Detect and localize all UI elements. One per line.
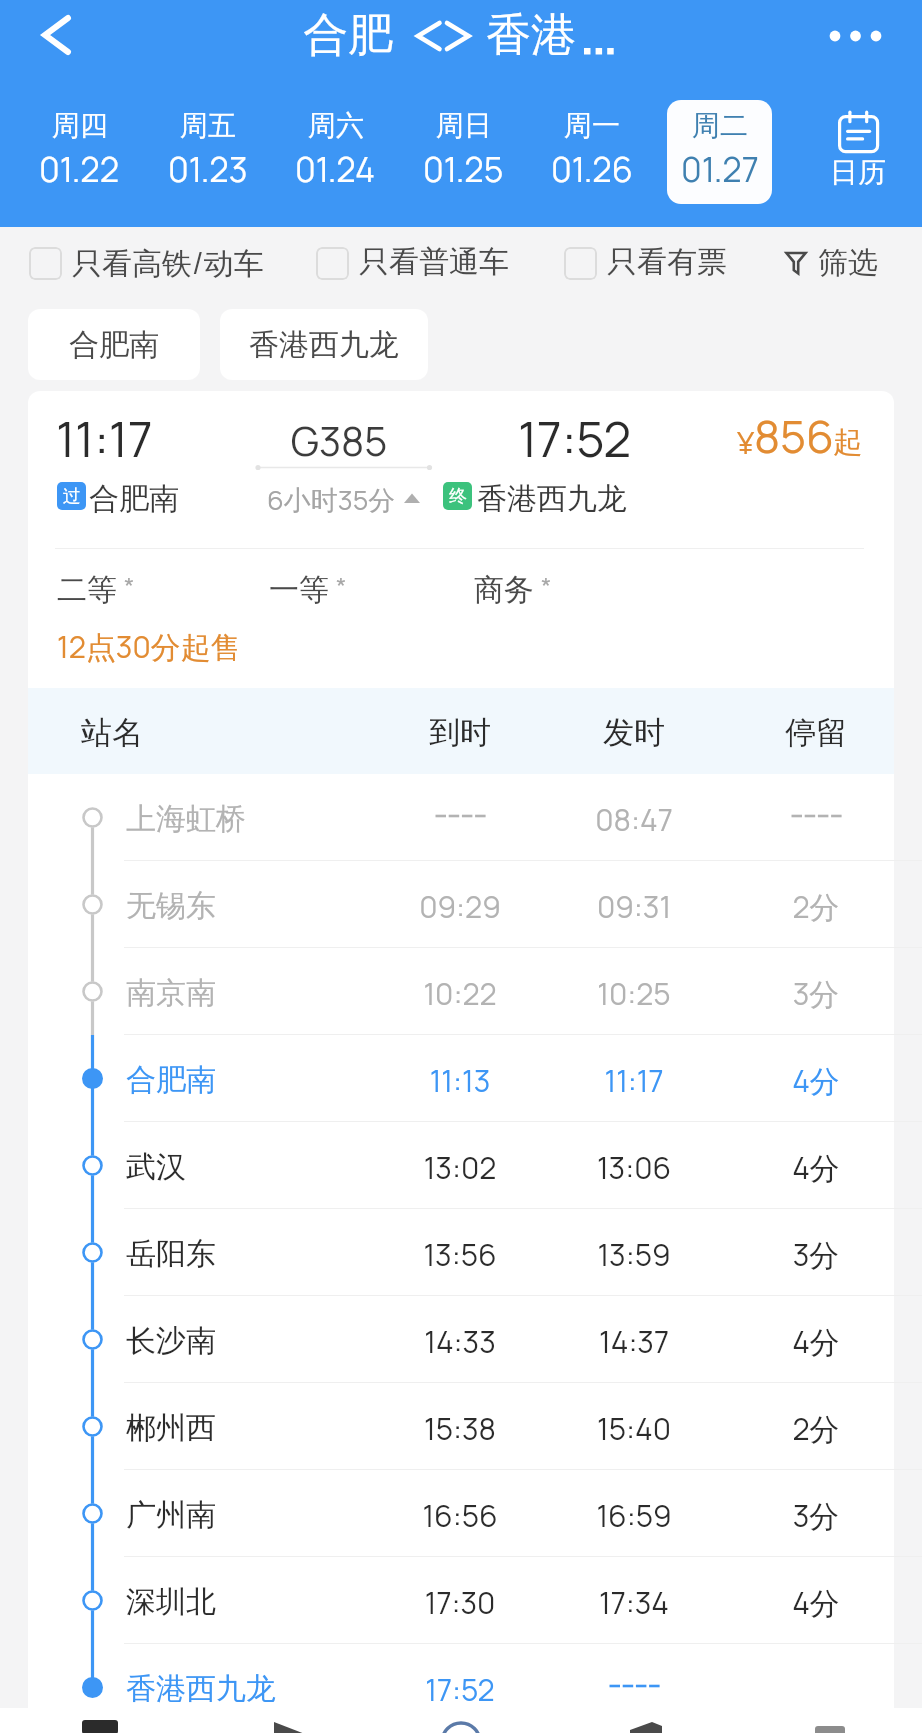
staticText: 01.23 xyxy=(168,146,248,192)
staticText: 08:47 xyxy=(534,799,734,840)
staticText: 只看高铁/动车 xyxy=(72,242,264,283)
staticText: 4分 xyxy=(716,1582,916,1623)
staticText: 长沙南 xyxy=(126,1322,216,1360)
staticText: 17:30 xyxy=(360,1582,560,1623)
button[interactable]: 周二 xyxy=(655,100,783,204)
staticText: 站名 xyxy=(81,713,143,752)
staticText: 周日 xyxy=(436,108,492,143)
staticText: 12点30分起售 xyxy=(57,626,241,667)
staticText: 2分 xyxy=(716,886,916,927)
staticText: 2分 xyxy=(716,1408,916,1449)
button[interactable]: 无锡东 xyxy=(28,861,894,948)
button[interactable]: 周日 xyxy=(399,100,527,204)
staticText: * xyxy=(124,569,135,602)
staticText: 停留 xyxy=(716,713,916,752)
staticText: 日历 xyxy=(797,155,919,190)
staticText: 01.22 xyxy=(39,146,120,192)
staticText: 周五 xyxy=(180,108,236,143)
button[interactable]: 广州南 xyxy=(28,1470,894,1557)
staticText: 14:33 xyxy=(360,1321,560,1362)
staticText: 16:59 xyxy=(534,1495,734,1536)
button[interactable]: 只看普通车 xyxy=(316,222,509,304)
button[interactable]: Back xyxy=(16,0,96,70)
staticText: 09:31 xyxy=(534,886,734,927)
staticText: 二等 xyxy=(57,571,117,609)
staticText: 3分 xyxy=(716,973,916,1014)
button[interactable]: 深圳北 xyxy=(28,1557,894,1644)
button[interactable]: 只看有票 xyxy=(564,222,727,304)
staticText: 4分 xyxy=(716,1147,916,1188)
staticText: * xyxy=(541,569,552,602)
button[interactable]: 周一 xyxy=(527,100,655,204)
staticText: 上海虹桥 xyxy=(126,800,246,838)
button[interactable]: 香港西九龙 xyxy=(28,1644,894,1731)
staticText: 只看普通车 xyxy=(359,243,509,281)
button[interactable]: More options xyxy=(808,0,898,70)
button[interactable]: 周五 xyxy=(143,100,271,204)
staticText: 14:37 xyxy=(534,1321,734,1362)
staticText: 11:17 xyxy=(534,1060,734,1101)
staticText: 09:29 xyxy=(360,886,560,927)
staticText: 4分 xyxy=(716,1060,916,1101)
staticText: 13:06 xyxy=(534,1147,734,1188)
button[interactable]: 岳阳东 xyxy=(28,1209,894,1296)
staticText: 筛选 xyxy=(818,244,878,282)
staticText: 10:25 xyxy=(534,973,734,1014)
button[interactable]: 南京南 xyxy=(28,948,894,1035)
staticText: ¥ xyxy=(737,421,755,463)
staticText: 13:56 xyxy=(360,1234,560,1275)
button[interactable]: 11:17 xyxy=(28,391,894,688)
staticText: 合肥南 xyxy=(69,326,159,364)
button[interactable]: 只看高铁/动车 xyxy=(29,222,264,304)
staticText: 17:52 xyxy=(518,405,632,472)
button[interactable]: Calendar xyxy=(800,100,922,204)
staticText: 16:56 xyxy=(360,1495,560,1536)
staticText: 17:34 xyxy=(534,1582,734,1623)
staticText: 合肥 xyxy=(303,7,393,64)
staticText: 10:22 xyxy=(360,973,560,1014)
button[interactable]: 周六 xyxy=(271,100,399,204)
staticText: 岳阳东 xyxy=(126,1235,216,1273)
staticText: 01.26 xyxy=(551,146,633,192)
staticText: 856 xyxy=(754,405,835,466)
button[interactable]: 周四 xyxy=(15,100,143,204)
staticText: 11:13 xyxy=(360,1060,560,1101)
staticText: 郴州西 xyxy=(126,1409,216,1447)
staticText: 只看有票 xyxy=(607,243,727,281)
button[interactable]: 长沙南 xyxy=(28,1296,894,1383)
staticText: 香港西九龙 xyxy=(249,326,399,364)
button[interactable]: 郴州西 xyxy=(28,1383,894,1470)
staticText: 发时 xyxy=(534,713,734,752)
staticText: 11:17 xyxy=(56,405,153,472)
staticText: 周四 xyxy=(52,108,108,143)
staticText: 17:52 xyxy=(360,1669,560,1710)
staticText: 南京南 xyxy=(126,974,216,1012)
staticText: 到时 xyxy=(360,713,560,752)
button[interactable]: 武汉 xyxy=(28,1122,894,1209)
staticText: 6小时35分 xyxy=(267,481,396,518)
staticText: 广州南 xyxy=(126,1496,216,1534)
staticText: 合肥南 xyxy=(89,480,179,518)
staticText: 无锡东 xyxy=(126,887,216,925)
staticText: 3分 xyxy=(716,1234,916,1275)
staticText: * xyxy=(336,569,347,602)
staticText: 周六 xyxy=(308,108,364,143)
staticText: 4分 xyxy=(716,1321,916,1362)
button[interactable]: 上海虹桥 xyxy=(28,774,894,861)
staticText: 一等 xyxy=(269,571,329,609)
staticText: 商务 xyxy=(474,571,534,609)
staticText: 01.24 xyxy=(295,146,376,192)
button[interactable]: 合肥南 xyxy=(28,1035,894,1122)
staticText: 3分 xyxy=(716,1495,916,1536)
button[interactable]: 合肥南 xyxy=(28,309,200,380)
staticText: 深圳北 xyxy=(126,1583,216,1621)
button[interactable]: 香港西九龙 xyxy=(220,309,428,380)
staticText: 周二 xyxy=(692,108,748,143)
staticText: 01.25 xyxy=(423,146,504,192)
staticText: 15:40 xyxy=(534,1408,734,1449)
staticText: 香港 xyxy=(486,7,576,64)
staticText: 15:38 xyxy=(360,1408,560,1449)
staticText: 合肥南 xyxy=(126,1061,216,1099)
button[interactable]: 筛选 xyxy=(785,222,878,304)
staticText: 香港西九龙 xyxy=(477,480,627,518)
